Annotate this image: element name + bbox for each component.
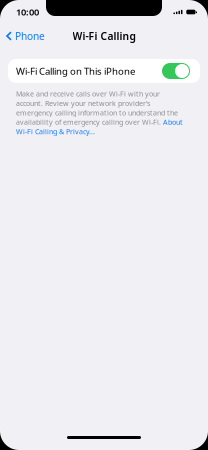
staticText: Phone: [15, 29, 45, 43]
button[interactable]: [162, 63, 190, 79]
button[interactable]: Phone: [0, 25, 45, 47]
staticText: Wi-Fi Calling: [72, 29, 135, 43]
staticText: account. Review your network provider's: [16, 98, 150, 108]
staticText: Wi-Fi Calling on This iPhone: [16, 64, 135, 78]
staticText: 10:00: [16, 6, 39, 18]
staticText: emergency calling information to underst…: [16, 108, 178, 117]
staticText: availability of emergency calling over W…: [16, 117, 163, 127]
staticText: About: [163, 117, 183, 127]
staticText: Wi-Fi Calling & Privacy...: [16, 127, 95, 136]
staticText: Make and receive calls over Wi-Fi with y…: [16, 89, 160, 99]
